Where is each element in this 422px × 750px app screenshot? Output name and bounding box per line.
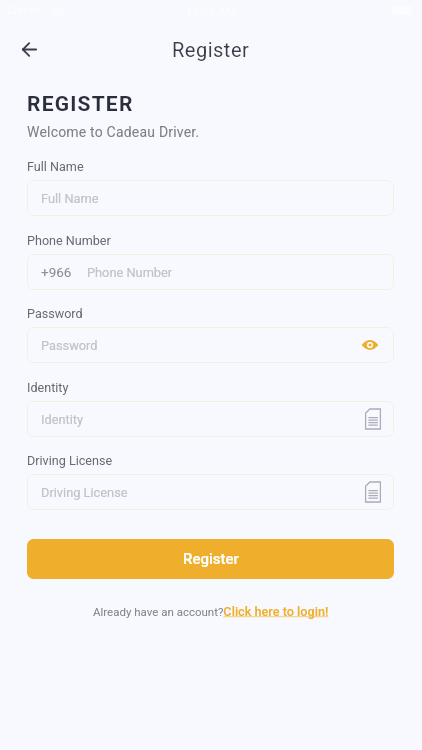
- button[interactable]: Full Name: [27, 180, 394, 216]
- staticText: Welcome to Cadeau Driver.: [27, 124, 200, 140]
- button[interactable]: Register: [27, 539, 394, 579]
- staticText: +966: [41, 264, 72, 280]
- button[interactable]: Upload document: [362, 481, 384, 503]
- staticText: Driving License: [41, 485, 128, 500]
- staticText: Phone Number: [87, 265, 173, 280]
- button[interactable]: Show password: [358, 333, 382, 357]
- staticText: Register: [172, 38, 250, 61]
- staticText: Full Name: [27, 159, 84, 174]
- staticText: REGISTER: [27, 92, 134, 117]
- button[interactable]: +966: [27, 254, 394, 290]
- staticText: Identity: [27, 380, 69, 395]
- button[interactable]: Upload document: [362, 408, 384, 430]
- button[interactable]: Back: [13, 33, 45, 65]
- button[interactable]: Identity: [27, 401, 394, 437]
- staticText: Register: [183, 550, 239, 568]
- staticText: Driving License: [27, 453, 113, 468]
- staticText: Password: [27, 306, 83, 321]
- button[interactable]: Driving License: [27, 474, 394, 510]
- staticText: Identity: [41, 412, 84, 427]
- staticText: Phone Number: [27, 233, 111, 248]
- staticText: Full Name: [41, 191, 99, 206]
- button[interactable]: Already have an account?Click here to lo…: [93, 604, 329, 619]
- staticText: Password: [41, 338, 98, 353]
- button[interactable]: Password: [27, 327, 394, 363]
